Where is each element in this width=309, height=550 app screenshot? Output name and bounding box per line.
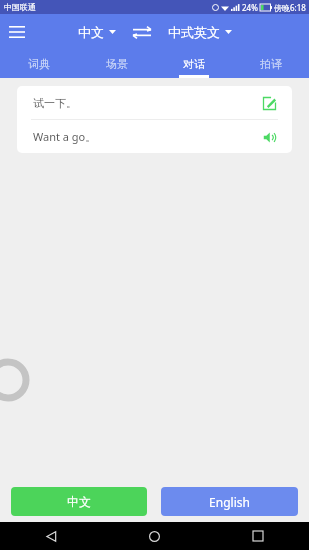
button[interactable]: Want a go。 [17, 120, 292, 153]
button[interactable]: Swap languages [129, 19, 155, 45]
button[interactable]: Edit [258, 92, 280, 114]
staticText: 24% [242, 2, 258, 13]
staticText: 词典 [28, 57, 50, 71]
button[interactable]: 场景 [78, 49, 155, 78]
button[interactable]: 拍译 [232, 49, 309, 78]
staticText: 傍晚6:18 [274, 2, 306, 13]
button[interactable]: Menu [0, 15, 34, 49]
staticText: English [209, 494, 250, 510]
staticText: 拍译 [260, 57, 282, 71]
staticText: 中文 [67, 494, 91, 509]
staticText: 中文 [78, 24, 104, 40]
button[interactable]: Recents [206, 522, 309, 550]
staticText: 中式英文 [168, 24, 220, 40]
button[interactable]: 中文 [11, 487, 147, 516]
button[interactable]: 中式英文 [165, 21, 235, 43]
staticText: 对话 [183, 57, 205, 71]
button[interactable]: English [161, 487, 298, 516]
staticText: 中国联通 [4, 2, 36, 12]
button[interactable]: Home [103, 522, 206, 550]
staticText: 试一下。 [33, 96, 258, 110]
staticText: Want a go。 [33, 129, 258, 144]
button[interactable]: 词典 [0, 49, 78, 78]
button[interactable]: 中文 [75, 21, 119, 43]
button[interactable]: Play audio [258, 126, 280, 148]
button[interactable]: 对话 [155, 49, 232, 78]
button[interactable]: 试一下。 [17, 86, 292, 119]
button[interactable]: Back [0, 522, 103, 550]
staticText: 场景 [106, 57, 128, 71]
